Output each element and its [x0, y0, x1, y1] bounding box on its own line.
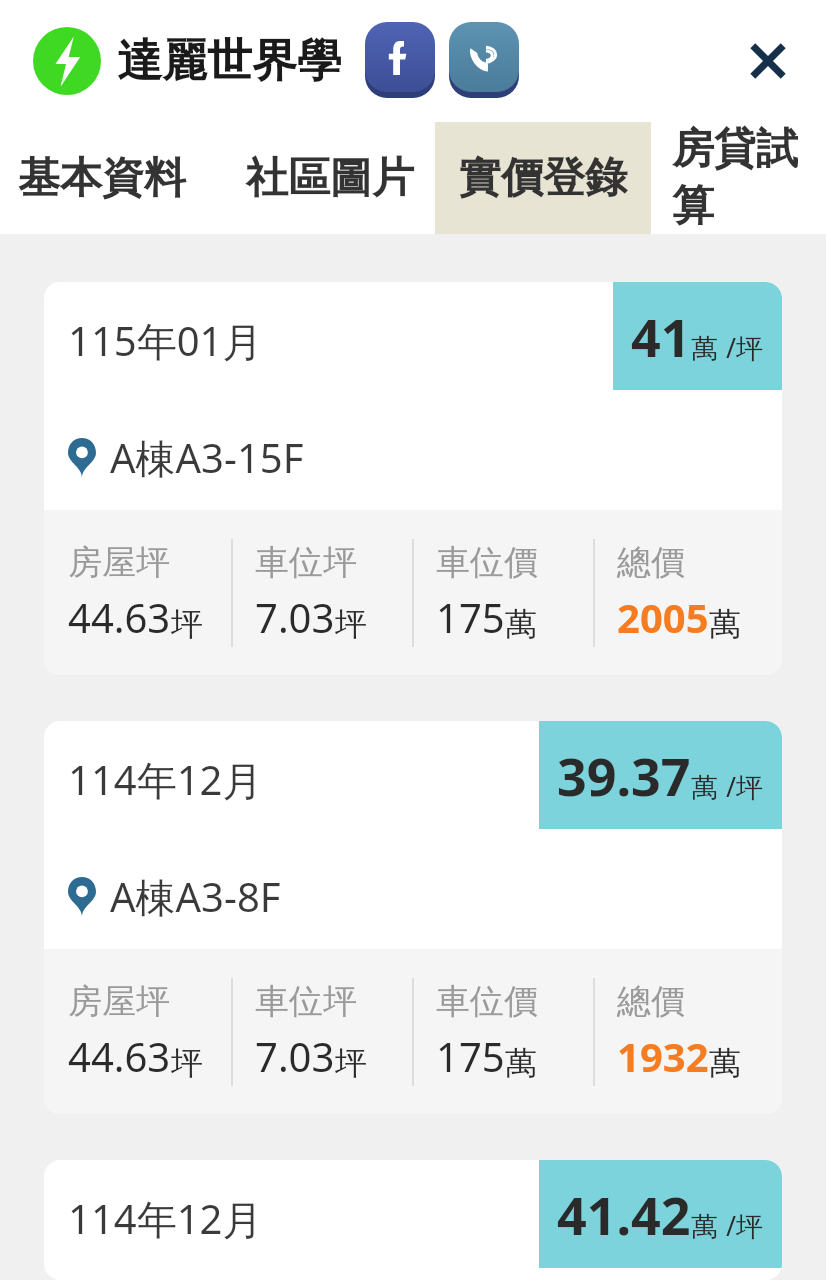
staticText: 萬 — [505, 604, 537, 644]
staticText: 達麗世界學 — [117, 33, 342, 90]
other: Logo — [33, 27, 101, 95]
staticText: 1932 — [617, 1029, 709, 1083]
staticText: /坪 — [726, 329, 764, 366]
button[interactable]: 房貸試算 — [651, 122, 826, 234]
staticText: 萬 — [505, 1043, 537, 1083]
staticText: 房貸試算 — [672, 123, 808, 233]
staticText: 坪 — [335, 604, 367, 644]
staticText: 坪 — [171, 1043, 203, 1083]
button[interactable]: 基本資料 — [0, 122, 216, 234]
staticText: 115年01月 — [68, 313, 263, 368]
staticText: 車位價 — [436, 980, 538, 1023]
button[interactable]: Facebook — [364, 22, 436, 100]
staticText: A棟A3-15F — [110, 430, 304, 485]
staticText: 44.63 — [68, 590, 171, 644]
staticText: 房屋坪 — [68, 541, 170, 584]
button[interactable]: 社區圖片 — [216, 122, 435, 234]
button[interactable]: 39.37 — [44, 721, 782, 1114]
button[interactable]: Call — [448, 22, 520, 100]
staticText: 萬 — [691, 332, 718, 366]
staticText: 7.03 — [255, 1029, 335, 1083]
staticText: 萬 — [691, 771, 718, 805]
staticText: 萬 — [691, 1210, 718, 1244]
staticText: 房屋坪 — [68, 980, 170, 1023]
staticText: 車位坪 — [255, 541, 357, 584]
staticText: 萬 — [709, 604, 741, 644]
staticText: 175 — [436, 1029, 505, 1083]
button[interactable]: 實價登錄 — [435, 122, 651, 234]
staticText: 車位價 — [436, 541, 538, 584]
staticText: 175 — [436, 590, 505, 644]
staticText: 實價登錄 — [459, 152, 627, 205]
staticText: 社區圖片 — [246, 152, 414, 205]
staticText: 41 — [631, 301, 691, 372]
staticText: 114年12月 — [68, 752, 263, 807]
staticText: 坪 — [171, 604, 203, 644]
staticText: 39.37 — [557, 740, 691, 811]
staticText: 總價 — [617, 541, 685, 584]
staticText: 基本資料 — [18, 152, 186, 205]
staticText: 7.03 — [255, 590, 335, 644]
staticText: 2005 — [617, 590, 709, 644]
staticText: 44.63 — [68, 1029, 171, 1083]
staticText: 萬 — [709, 1043, 741, 1083]
staticText: 坪 — [335, 1043, 367, 1083]
staticText: A棟A3-8F — [110, 869, 281, 924]
staticText: 114年12月 — [68, 1191, 263, 1246]
staticText: 41.42 — [557, 1179, 691, 1250]
staticText: /坪 — [726, 1207, 764, 1244]
staticText: 總價 — [617, 980, 685, 1023]
button[interactable]: Close — [736, 29, 800, 93]
button[interactable]: 41.42 — [44, 1160, 782, 1280]
button[interactable]: 41 — [44, 282, 782, 675]
staticText: 車位坪 — [255, 980, 357, 1023]
staticText: /坪 — [726, 768, 764, 805]
